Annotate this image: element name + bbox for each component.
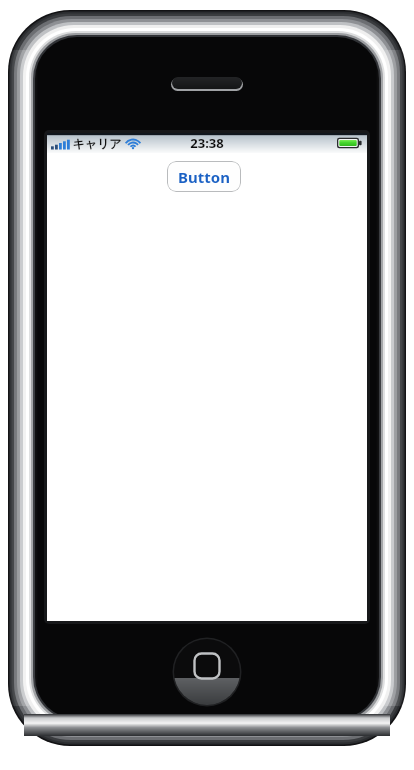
staticText: 23:38	[190, 134, 224, 152]
staticText: キャリア	[72, 136, 122, 151]
staticText: Button	[178, 167, 230, 187]
button[interactable]: Button	[167, 161, 241, 192]
